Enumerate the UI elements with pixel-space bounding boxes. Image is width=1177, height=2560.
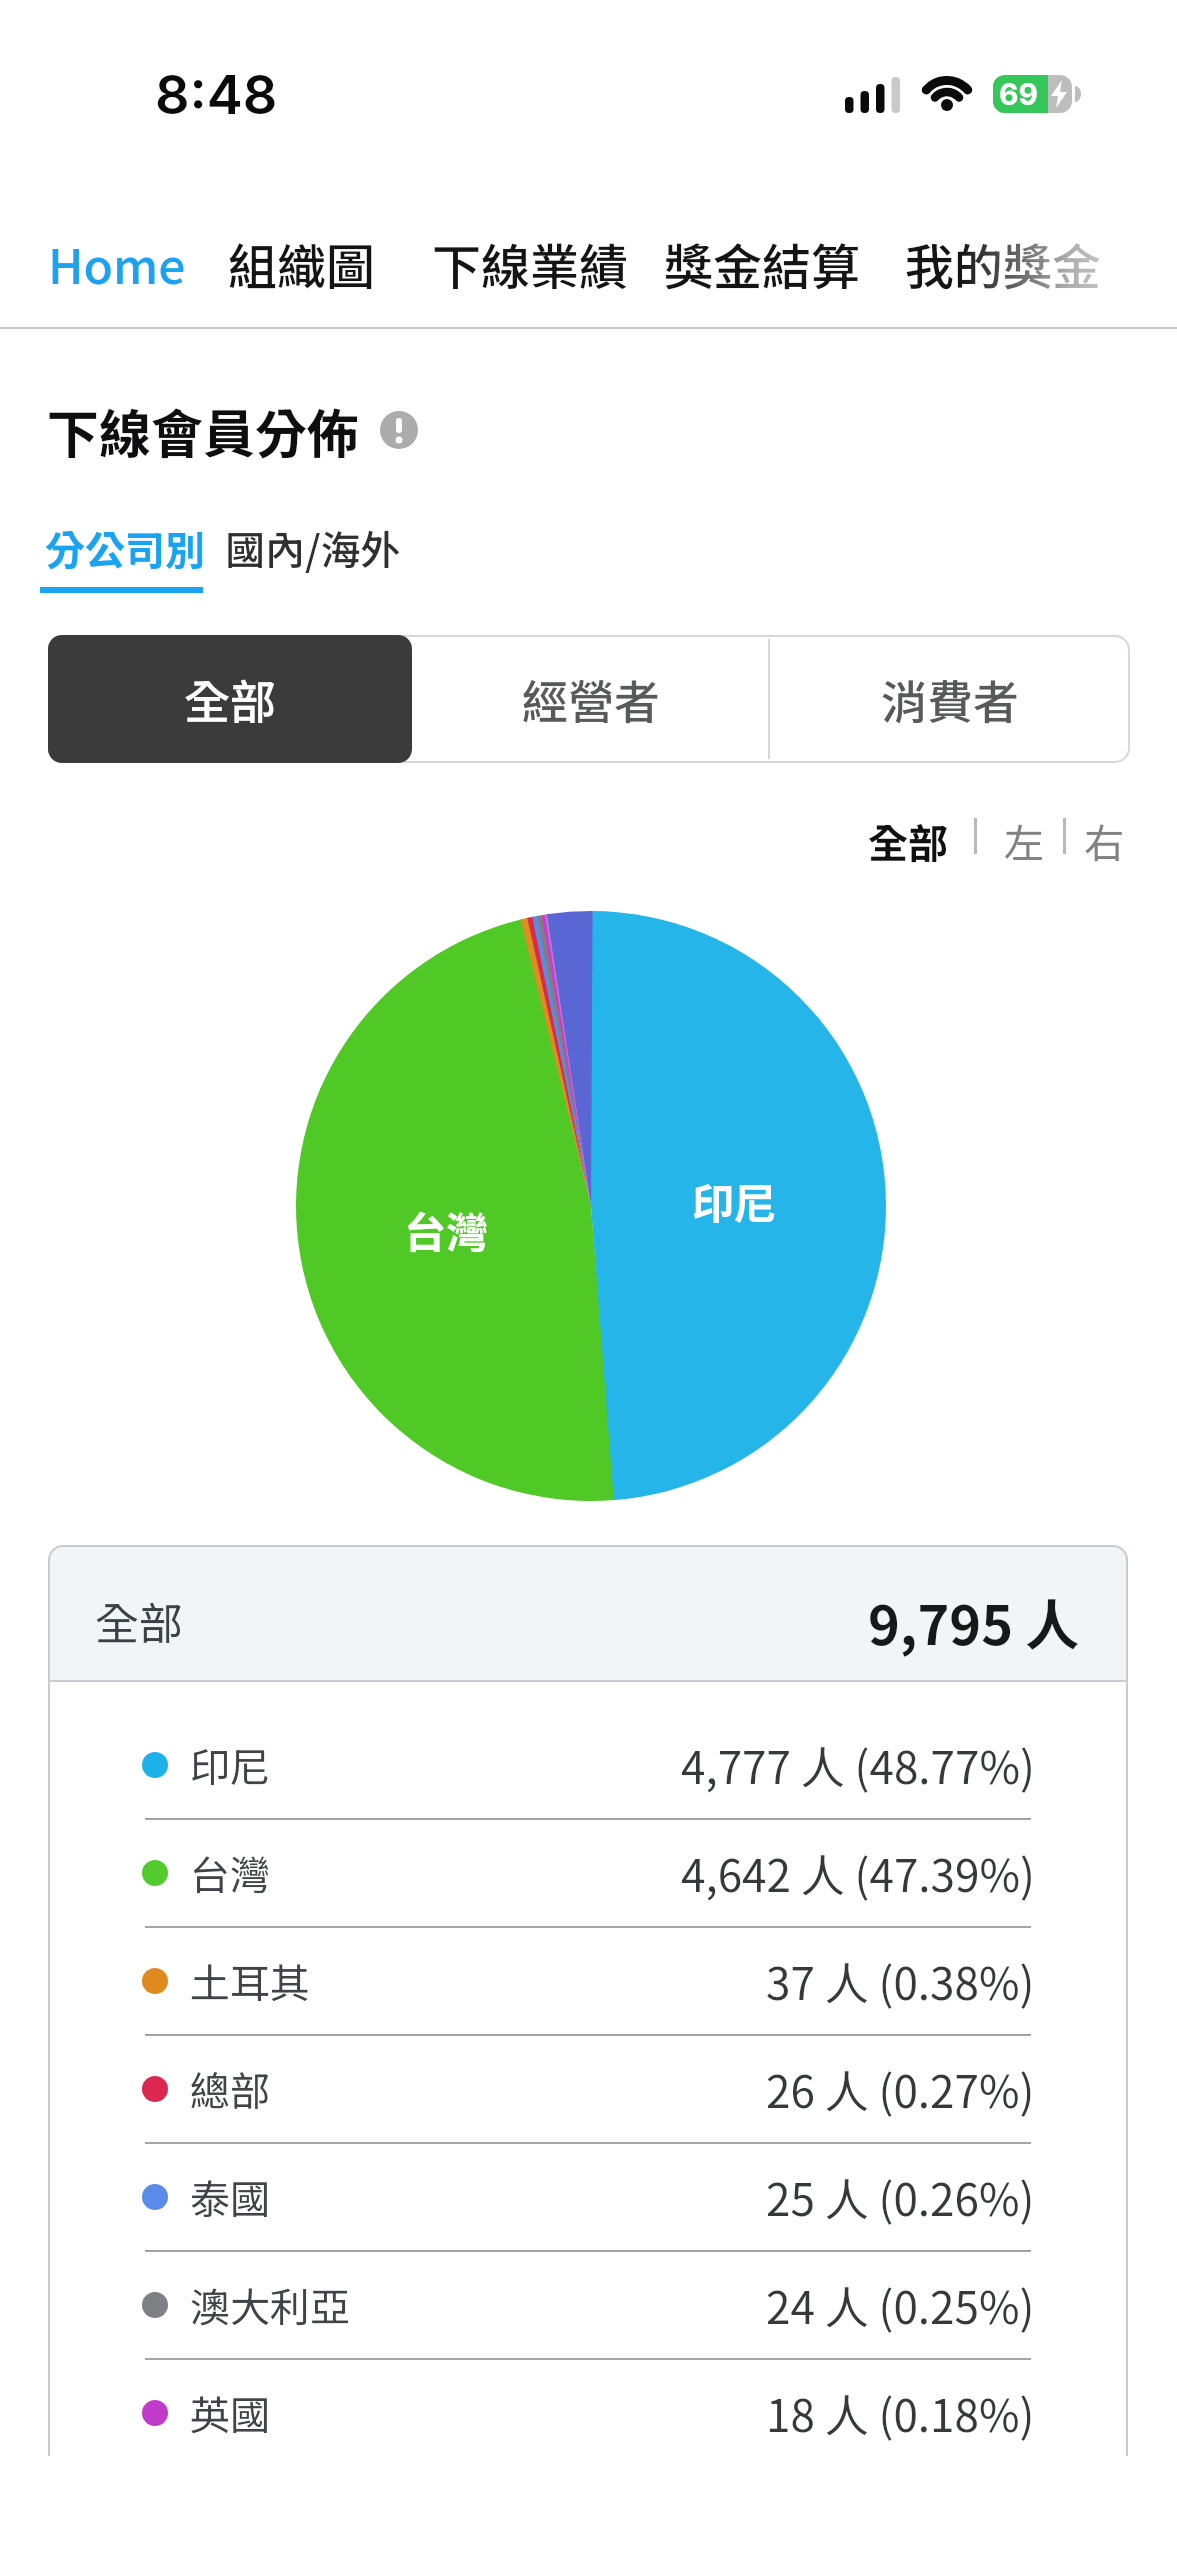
button[interactable]: 全部 bbox=[862, 812, 954, 860]
staticText: 24 人 (0.25%) bbox=[766, 2273, 1035, 2337]
staticText: 英國 bbox=[190, 2384, 270, 2442]
button[interactable]: 全部 bbox=[48, 635, 412, 763]
button[interactable]: 下線業績 bbox=[432, 228, 632, 290]
staticText: 印尼 bbox=[190, 1736, 270, 1794]
button[interactable]: 澳大利亞 bbox=[50, 2251, 1126, 2359]
button[interactable]: 台灣 bbox=[50, 1819, 1126, 1927]
staticText: 8:48 bbox=[155, 62, 278, 124]
button[interactable]: 經營者 bbox=[412, 635, 769, 763]
button[interactable]: 右 bbox=[1076, 812, 1132, 860]
staticText: 下線業績 bbox=[432, 228, 629, 290]
staticText: 左 bbox=[1004, 812, 1044, 860]
staticText: 全部 bbox=[95, 1589, 183, 1637]
button[interactable]: 我的獎金 bbox=[905, 228, 1177, 290]
staticText: 消費者 bbox=[881, 666, 1019, 733]
staticText: 我的獎金 bbox=[905, 228, 1102, 290]
staticText: 全部 bbox=[868, 812, 948, 860]
button[interactable]: 總部 bbox=[50, 2035, 1126, 2143]
staticText: 9,795 人 bbox=[868, 1582, 1080, 1642]
button[interactable]: 英國 bbox=[50, 2359, 1126, 2467]
staticText: 4,642 人 (47.39%) bbox=[681, 1841, 1035, 1905]
staticText: 台灣 bbox=[404, 1199, 489, 1259]
button[interactable]: 組織圖 bbox=[228, 228, 378, 290]
button[interactable]: 消費者 bbox=[769, 635, 1130, 763]
staticText: 69 bbox=[999, 76, 1038, 112]
staticText: 台灣 bbox=[190, 1844, 270, 1902]
button[interactable]: 泰國 bbox=[50, 2143, 1126, 2251]
staticText: 25 人 (0.26%) bbox=[766, 2165, 1035, 2229]
staticText: 分公司別 bbox=[45, 519, 205, 577]
staticText: 獎金結算 bbox=[664, 228, 861, 290]
staticText: 下線會員分佈 bbox=[47, 393, 360, 459]
staticText: 泰國 bbox=[190, 2168, 270, 2226]
staticText: 印尼 bbox=[692, 1170, 777, 1230]
staticText: 26 人 (0.27%) bbox=[766, 2057, 1035, 2121]
staticText: 組織圖 bbox=[228, 228, 376, 290]
button[interactable]: Home bbox=[48, 228, 213, 290]
staticText: 土耳其 bbox=[190, 1952, 310, 2010]
button[interactable]: 左 bbox=[996, 812, 1052, 860]
button[interactable]: 印尼 bbox=[50, 1711, 1126, 1819]
button[interactable]: 土耳其 bbox=[50, 1927, 1126, 2035]
staticText: 4,777 人 (48.77%) bbox=[681, 1733, 1035, 1797]
button[interactable]: 分公司別 bbox=[45, 518, 230, 578]
button[interactable] bbox=[380, 411, 418, 449]
staticText: 37 人 (0.38%) bbox=[766, 1949, 1035, 2013]
staticText: 澳大利亞 bbox=[190, 2276, 350, 2334]
staticText: 總部 bbox=[190, 2060, 270, 2118]
staticText: 國內/海外 bbox=[225, 519, 401, 577]
staticText: 全部 bbox=[184, 666, 276, 733]
staticText: 18 人 (0.18%) bbox=[766, 2381, 1035, 2445]
staticText: 右 bbox=[1084, 812, 1124, 860]
staticText: Home bbox=[48, 228, 186, 290]
button[interactable]: 國內/海外 bbox=[225, 518, 415, 578]
button[interactable]: 獎金結算 bbox=[664, 228, 864, 290]
staticText: 經營者 bbox=[522, 666, 660, 733]
